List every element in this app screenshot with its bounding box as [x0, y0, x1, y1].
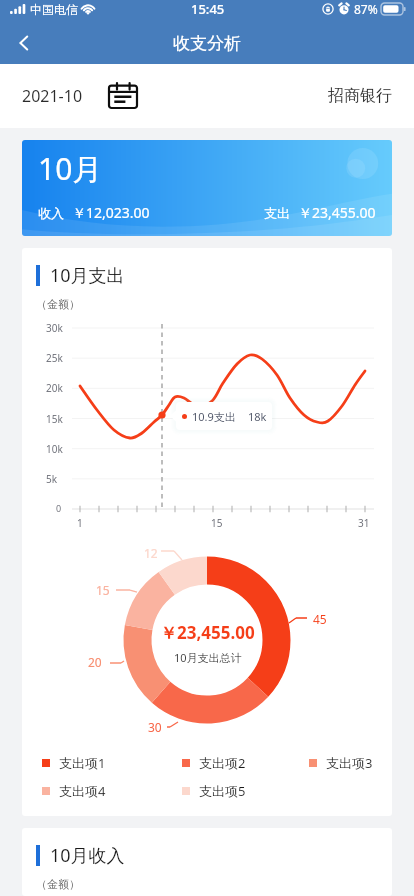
staticText: 10月支出: [50, 263, 125, 288]
staticText: 10月支出总计: [174, 650, 242, 665]
staticText: 2021-10: [22, 85, 83, 107]
staticText: （金额）: [36, 877, 80, 891]
staticText: 15k: [46, 412, 63, 426]
staticText: 10.9支出: [192, 409, 236, 424]
button[interactable]: Back: [6, 25, 42, 61]
staticText: 30k: [46, 321, 63, 335]
staticText: 10k: [46, 442, 63, 456]
staticText: 15: [211, 516, 223, 530]
staticText: 收入: [38, 205, 64, 221]
staticText: 支出项4: [59, 782, 106, 800]
staticText: 中国电信: [30, 2, 78, 17]
staticText: 0: [56, 502, 62, 514]
staticText: ￥23,455.00: [160, 621, 255, 644]
staticText: 15: [96, 582, 110, 598]
staticText: 15:45: [191, 0, 225, 18]
staticText: 10月: [38, 148, 103, 189]
button[interactable]: 招商银行: [328, 80, 392, 112]
staticText: 30: [148, 719, 162, 735]
button[interactable]: 支出项5: [182, 780, 246, 802]
staticText: 10月收入: [50, 843, 125, 868]
staticText: ￥12,023.00: [72, 203, 150, 222]
staticText: 支出项2: [199, 754, 246, 772]
staticText: 支出项1: [59, 754, 106, 772]
staticText: 18k: [248, 409, 267, 424]
button[interactable]: 10月: [22, 140, 392, 236]
button[interactable]: 支出项2: [182, 752, 246, 774]
button[interactable]: 2021-10: [22, 83, 138, 109]
button[interactable]: 支出项4: [42, 780, 106, 802]
staticText: 支出项3: [326, 754, 373, 772]
staticText: 支出: [264, 205, 290, 221]
staticText: 45: [313, 611, 327, 627]
staticText: 20k: [46, 381, 63, 395]
staticText: 1: [77, 516, 83, 530]
button[interactable]: 支出项3: [309, 752, 373, 774]
button[interactable]: 支出项1: [42, 752, 106, 774]
staticText: 25k: [46, 351, 63, 365]
staticText: （金额）: [36, 297, 80, 311]
staticText: 20: [88, 654, 102, 670]
staticText: ￥23,455.00: [298, 203, 376, 222]
staticText: 支出项5: [199, 782, 246, 800]
staticText: 收支分析: [173, 33, 241, 54]
staticText: 5k: [46, 472, 58, 486]
staticText: 31: [358, 516, 370, 530]
staticText: 12: [144, 545, 158, 561]
staticText: 87%: [354, 1, 378, 17]
